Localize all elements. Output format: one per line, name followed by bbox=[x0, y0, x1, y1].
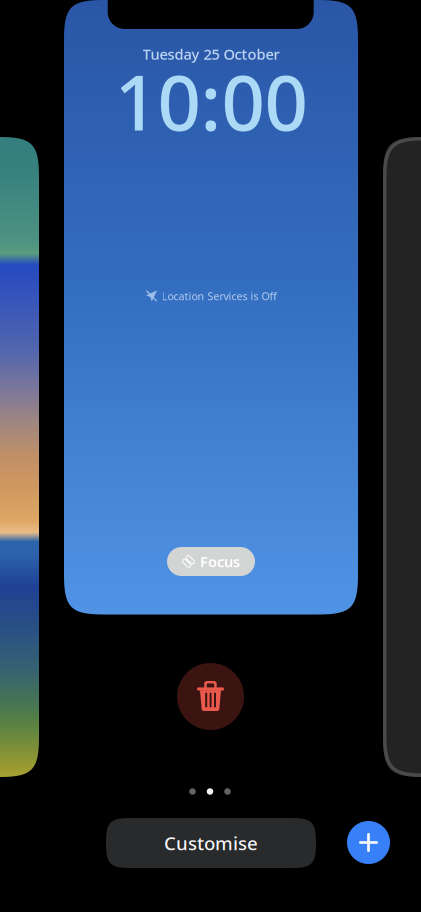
staticText: Customise bbox=[164, 831, 258, 855]
button[interactable]: Customise bbox=[106, 818, 316, 868]
staticText: Location Services is Off bbox=[161, 289, 276, 303]
staticText: 10:00 bbox=[114, 50, 307, 151]
button[interactable]: Delete bbox=[177, 663, 244, 730]
button[interactable]: Add new wallpaper bbox=[347, 821, 390, 864]
staticText: Focus bbox=[200, 552, 240, 571]
staticText: Tuesday 25 October bbox=[142, 44, 279, 64]
